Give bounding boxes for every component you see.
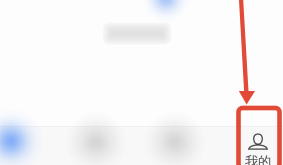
staticText: 我的	[245, 153, 271, 165]
button[interactable]: 消息	[138, 122, 212, 161]
button[interactable]: 我的	[221, 131, 283, 165]
button[interactable]: 发现	[59, 122, 133, 161]
button[interactable]: 首页	[0, 121, 48, 160]
